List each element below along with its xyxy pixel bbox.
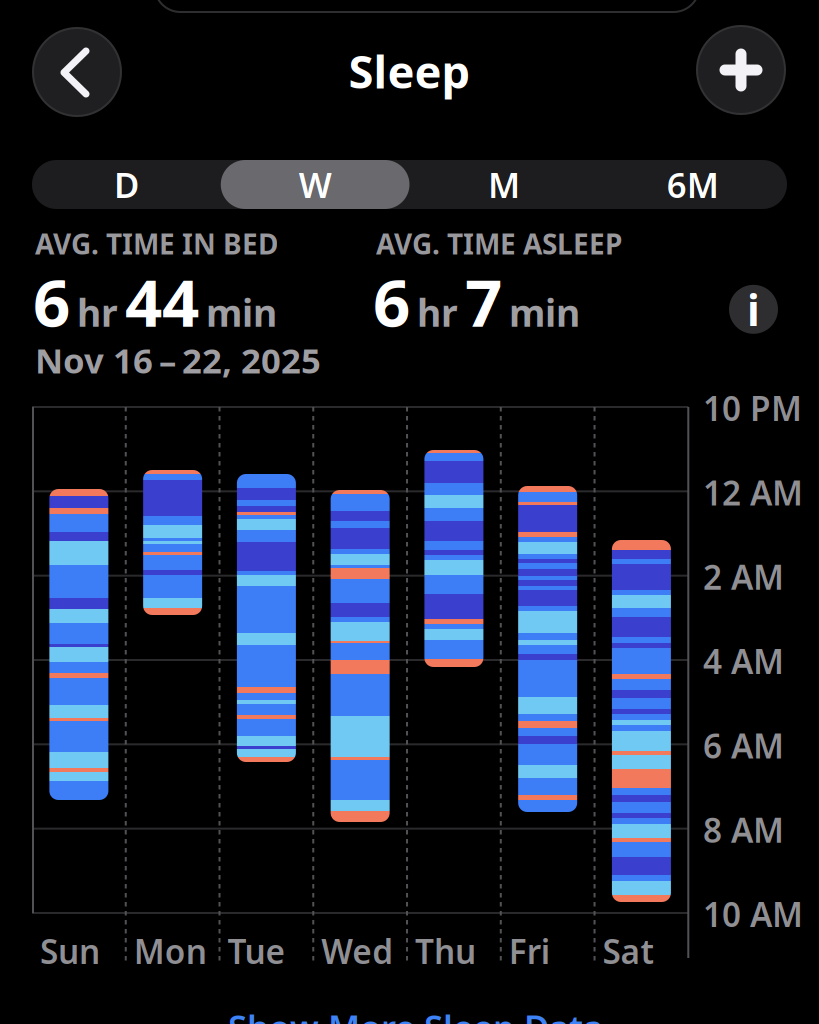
staticText: D: [114, 161, 139, 207]
staticText: 6M: [667, 161, 719, 207]
staticText: Wed: [321, 929, 393, 973]
button[interactable]: About Sleep: [729, 281, 778, 338]
button[interactable]: M: [409, 160, 598, 209]
staticText: W: [299, 161, 332, 207]
staticText: min: [509, 287, 580, 337]
staticText: 6 AM: [703, 723, 784, 768]
staticText: Tue: [227, 929, 285, 973]
staticText: hr: [417, 287, 458, 337]
button[interactable]: Back: [33, 28, 121, 116]
staticText: 10 AM: [703, 892, 803, 936]
staticText: 6: [373, 258, 410, 345]
staticText: Sat: [602, 929, 654, 973]
staticText: 8 AM: [703, 808, 784, 852]
staticText: 44: [125, 258, 199, 345]
staticText: Sun: [40, 929, 100, 973]
staticText: Mon: [134, 929, 207, 973]
staticText: 10 PM: [703, 386, 802, 430]
button[interactable]: Show More Sleep Data: [228, 1004, 603, 1024]
staticText: M: [488, 161, 520, 207]
staticText: 2 AM: [703, 555, 784, 599]
staticText: 6: [33, 258, 70, 345]
button[interactable]: D: [32, 160, 221, 209]
button[interactable]: 6M: [598, 160, 787, 209]
button[interactable]: W: [221, 160, 410, 209]
staticText: min: [206, 287, 277, 337]
staticText: Fri: [509, 929, 550, 973]
staticText: Show More Sleep Data: [228, 1004, 603, 1024]
staticText: hr: [77, 287, 118, 337]
staticText: AVG. TIME ASLEEP: [376, 225, 622, 262]
staticText: AVG. TIME IN BED: [35, 225, 278, 262]
staticText: Sleep: [348, 41, 470, 101]
staticText: 7: [465, 258, 502, 345]
staticText: i: [747, 281, 760, 338]
button[interactable]: Add Data: [697, 26, 785, 114]
staticText: 12 AM: [703, 470, 803, 515]
staticText: Nov 16 – 22, 2025: [35, 337, 321, 383]
staticText: 4 AM: [703, 639, 784, 683]
staticText: Thu: [415, 929, 476, 973]
